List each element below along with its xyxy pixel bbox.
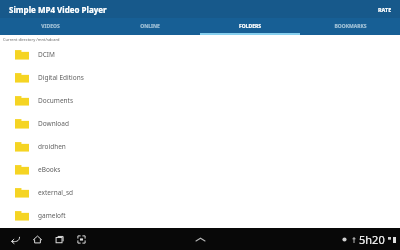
- button[interactable]: Digital Editions: [0, 66, 400, 89]
- button[interactable]: Home: [26, 228, 48, 250]
- button[interactable]: eBooks: [0, 158, 400, 181]
- staticText: Download: [38, 119, 69, 128]
- button[interactable]: Show notifications: [192, 231, 208, 247]
- button[interactable]: Documents: [0, 89, 400, 112]
- button[interactable]: FOLDERS: [200, 18, 300, 35]
- staticText: VIDEOS: [41, 23, 60, 30]
- button[interactable]: Screenshot: [70, 228, 92, 250]
- staticText: FOLDERS: [239, 23, 261, 30]
- staticText: gameloft: [38, 211, 66, 220]
- button[interactable]: external_sd: [0, 181, 400, 204]
- staticText: droidhen: [38, 142, 66, 151]
- button[interactable]: Recent apps: [48, 228, 70, 250]
- button[interactable]: RATE: [370, 0, 400, 18]
- staticText: BOOKMARKS: [334, 23, 367, 30]
- button[interactable]: Download: [0, 112, 400, 135]
- button[interactable]: VIDEOS: [0, 18, 100, 35]
- staticText: RATE: [378, 6, 392, 13]
- button[interactable]: DCIM: [0, 43, 400, 66]
- button[interactable]: gameloft: [0, 204, 400, 227]
- staticText: Documents: [38, 96, 74, 105]
- button[interactable]: ONLINE: [100, 18, 200, 35]
- staticText: Simple MP4 Video Player: [9, 4, 107, 15]
- button[interactable]: droidhen: [0, 135, 400, 158]
- staticText: DCIM: [38, 50, 55, 59]
- button[interactable]: BOOKMARKS: [300, 18, 400, 35]
- staticText: ONLINE: [140, 23, 160, 30]
- staticText: Digital Editions: [38, 73, 84, 82]
- staticText: external_sd: [38, 188, 74, 197]
- staticText: 5h20: [359, 232, 385, 247]
- staticText: eBooks: [38, 165, 61, 174]
- button[interactable]: Back: [4, 228, 26, 250]
- staticText: Current directory /mnt/sdcard: [3, 37, 60, 42]
